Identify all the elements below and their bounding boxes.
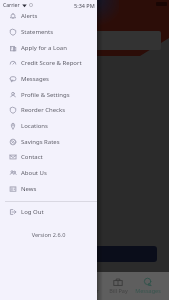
button[interactable]: Statements: [0, 24, 97, 40]
button[interactable]: Reorder Checks: [0, 102, 97, 118]
staticText: Alerts: [21, 12, 38, 20]
button[interactable]: Messages: [0, 71, 97, 87]
staticText: About Us: [21, 169, 47, 177]
staticText: Transfer: [77, 287, 99, 294]
button[interactable]: Profile & Settings: [0, 87, 97, 102]
button[interactable]: Bill Pay: [103, 272, 133, 300]
button[interactable]: [8, 246, 157, 262]
staticText: Savings Rates: [21, 138, 60, 146]
button[interactable]: Contact: [0, 149, 97, 165]
staticText: 5:34 PM: [74, 2, 95, 9]
button[interactable]: Alerts: [0, 8, 97, 24]
staticText: Locations: [21, 122, 48, 130]
button[interactable]: News: [0, 181, 97, 196]
button[interactable]: Log Out: [0, 204, 97, 220]
staticText: Bill Pay: [109, 287, 128, 294]
button[interactable]: Spend: [8, 31, 161, 50]
button[interactable]: Messages: [133, 272, 163, 300]
staticText: Messages: [135, 287, 161, 294]
staticText: News: [21, 185, 37, 193]
button[interactable]: Locations: [0, 118, 97, 134]
staticText: Credit Score & Report: [21, 59, 82, 67]
button[interactable]: About Us: [0, 165, 97, 181]
button[interactable]: Savings Rates: [0, 134, 97, 149]
staticText: Carrier: [3, 2, 20, 9]
button[interactable]: Transfer: [73, 272, 103, 300]
staticText: Log Out: [21, 208, 44, 216]
button[interactable]: Apply for a Loan: [0, 40, 97, 55]
staticText: Contact: [21, 153, 43, 161]
button[interactable]: Credit Score & Report: [0, 55, 97, 71]
staticText: Reorder Checks: [21, 106, 66, 114]
staticText: Apply for a Loan: [21, 44, 67, 52]
staticText: Messages: [21, 75, 49, 83]
staticText: Statements: [21, 28, 54, 36]
staticText: Version 2.6.0: [0, 231, 97, 239]
staticText: Profile & Settings: [21, 91, 70, 99]
